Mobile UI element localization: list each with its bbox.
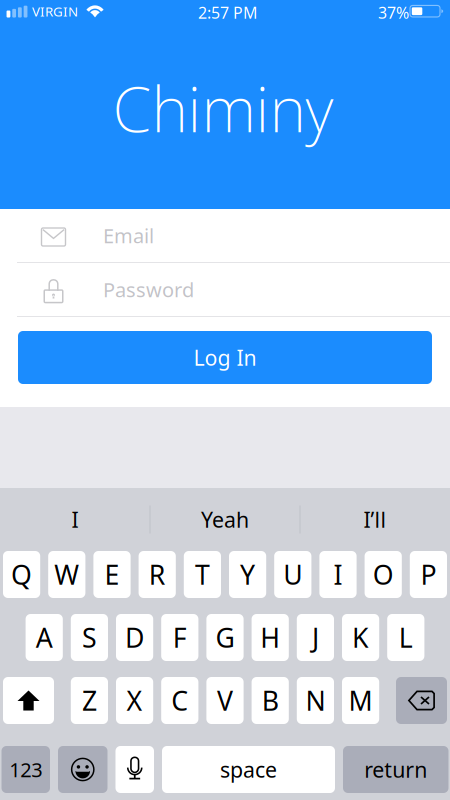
staticText: 123	[9, 756, 42, 783]
staticText: I	[333, 557, 342, 592]
button[interactable]: L	[387, 614, 424, 661]
staticText: Q	[11, 557, 32, 592]
staticText: X	[127, 683, 143, 718]
staticText: return	[364, 755, 427, 784]
button[interactable]: R	[139, 551, 176, 598]
staticText: 37%	[378, 2, 409, 23]
button[interactable]: S	[71, 614, 108, 661]
staticText: 2:57 PM	[198, 2, 258, 23]
button[interactable]: G	[206, 614, 244, 661]
staticText: space	[220, 755, 277, 784]
staticText: VIRGIN	[32, 2, 78, 20]
button[interactable]: J	[297, 614, 334, 661]
staticText: U	[283, 557, 302, 592]
staticText: M	[349, 683, 373, 718]
button[interactable]: K	[342, 614, 379, 661]
staticText: V	[217, 683, 233, 718]
button[interactable]: X	[116, 677, 153, 724]
staticText: D	[125, 620, 144, 655]
staticText: O	[373, 557, 394, 592]
button[interactable]: Q	[3, 551, 40, 598]
button[interactable]: Z	[71, 677, 108, 724]
button[interactable]: A	[26, 614, 63, 661]
button[interactable]: O	[365, 551, 402, 598]
staticText: W	[54, 557, 79, 592]
button[interactable]: U	[274, 551, 311, 598]
button[interactable]: space	[162, 746, 335, 793]
button[interactable]: I’ll	[300, 488, 449, 551]
button[interactable]: E	[93, 551, 131, 598]
staticText: I	[71, 505, 78, 534]
staticText: G	[215, 620, 234, 655]
button[interactable]: Y	[229, 551, 266, 598]
button[interactable]: F	[161, 614, 198, 661]
staticText: K	[352, 620, 369, 655]
staticText: Password	[103, 276, 194, 303]
button[interactable]: T	[184, 551, 221, 598]
staticText: H	[260, 620, 280, 655]
staticText: F	[173, 620, 187, 655]
staticText: S	[82, 620, 97, 655]
staticText: Chiminy	[112, 66, 333, 150]
button[interactable]: Delete	[396, 677, 447, 724]
button[interactable]: Shift	[3, 677, 54, 724]
staticText: C	[171, 683, 188, 718]
staticText: Z	[82, 683, 97, 718]
button[interactable]: Yeah	[150, 488, 299, 551]
staticText: J	[312, 620, 319, 655]
button[interactable]: B	[252, 677, 289, 724]
staticText: Email	[103, 222, 154, 249]
button[interactable]: C	[161, 677, 198, 724]
staticText: B	[262, 683, 279, 718]
button[interactable]: H	[252, 614, 289, 661]
button[interactable]: 123	[1, 746, 50, 793]
button[interactable]: M	[342, 677, 379, 724]
button[interactable]: I	[319, 551, 357, 598]
button[interactable]: P	[410, 551, 447, 598]
button[interactable]: V	[206, 677, 244, 724]
staticText: E	[104, 557, 119, 592]
staticText: I’ll	[363, 505, 386, 534]
staticText: N	[305, 683, 325, 718]
button[interactable]: W	[48, 551, 85, 598]
button[interactable]: return	[343, 746, 448, 793]
staticText: P	[420, 557, 436, 592]
button[interactable]: N	[297, 677, 334, 724]
button[interactable]: Log In	[18, 331, 432, 384]
button[interactable]: D	[116, 614, 153, 661]
staticText: T	[195, 557, 210, 592]
staticText: A	[36, 620, 53, 655]
button[interactable]: Dictate	[115, 746, 154, 793]
staticText: L	[399, 620, 413, 655]
button[interactable]: I	[0, 488, 149, 551]
staticText: Y	[240, 557, 255, 592]
staticText: Yeah	[201, 505, 249, 534]
staticText: R	[149, 557, 166, 592]
staticText: Log In	[193, 343, 256, 372]
button[interactable]: Emoji	[58, 746, 107, 793]
